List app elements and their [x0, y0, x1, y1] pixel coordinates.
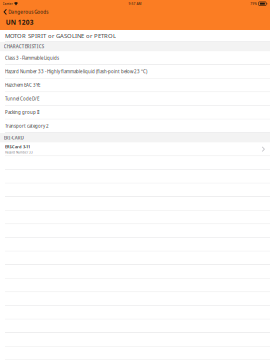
staticText: MOTOR SPIRIT or GASOLINE or PETROL	[5, 32, 116, 40]
staticText: 9:57 AM	[128, 1, 141, 6]
staticText: UN 1203	[6, 18, 34, 27]
staticText: CHARACTERISTICS	[4, 44, 44, 50]
staticText: Tunnel Code D/E	[5, 96, 39, 102]
staticText: 79%	[250, 1, 257, 6]
button[interactable]: Tunnel Code D/E	[0, 92, 270, 106]
button[interactable]: Hazard Number 33 - Highly flammable liqu…	[0, 65, 270, 79]
staticText: Transport category 2	[5, 123, 49, 129]
staticText: Class 3 - Flammable Liquids	[5, 55, 59, 61]
button[interactable]: Packing group II	[0, 106, 270, 119]
staticText: Hazchem EAC 3YE	[5, 82, 40, 88]
button[interactable]: MOTOR SPIRIT or GASOLINE or PETROL	[0, 30, 270, 42]
button[interactable]: Hazchem EAC 3YE	[0, 79, 270, 92]
button[interactable]: ERI-Card 3-11	[0, 143, 270, 156]
button[interactable]: Transport category 2	[0, 119, 270, 133]
staticText: Packing group II	[5, 109, 39, 115]
staticText: ERI-CARD	[4, 135, 24, 141]
button[interactable]: Dangerous Goods	[0, 7, 48, 16]
staticText: Hazard Number 33	[5, 150, 33, 154]
staticText: Hazard Number 33 - Highly flammable liqu…	[5, 69, 147, 75]
staticText: Dangerous Goods	[8, 9, 48, 15]
staticText: ERI-Card 3-11	[5, 144, 30, 149]
staticText: Carrier	[3, 1, 13, 6]
button[interactable]: Class 3 - Flammable Liquids	[0, 51, 270, 65]
